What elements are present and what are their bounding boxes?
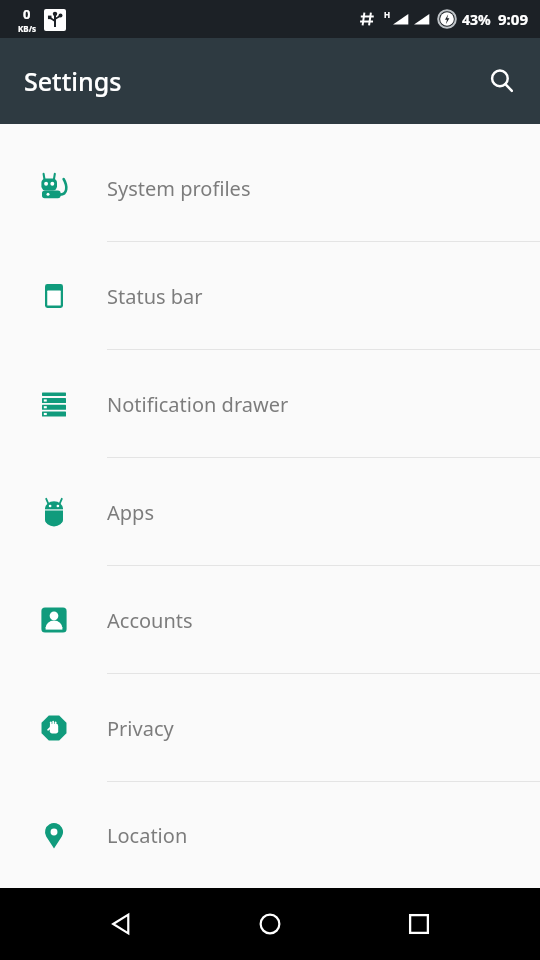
button[interactable]: Apps (0, 458, 540, 566)
staticText: Apps (107, 499, 154, 526)
button[interactable]: Notification drawer (0, 350, 540, 458)
staticText: Location (107, 822, 188, 849)
staticText: 43% (462, 10, 491, 29)
button[interactable]: Recent apps (391, 896, 447, 952)
staticText: 0 (23, 5, 31, 23)
button[interactable]: Location (0, 782, 540, 888)
staticText: 9:09 (498, 9, 528, 29)
staticText: Privacy (107, 715, 174, 742)
staticText: Settings (24, 64, 122, 98)
staticText: Status bar (107, 283, 203, 310)
button[interactable]: Status bar (0, 242, 540, 350)
button[interactable]: Back (93, 896, 149, 952)
staticText: Notification drawer (107, 391, 289, 418)
button[interactable]: Search (478, 57, 526, 105)
button[interactable]: System profiles (0, 134, 540, 242)
staticText: System profiles (107, 175, 251, 202)
staticText: H (384, 9, 391, 20)
button[interactable]: Home (242, 896, 298, 952)
button[interactable]: Accounts (0, 566, 540, 674)
button[interactable]: Privacy (0, 674, 540, 782)
staticText: KB/s (18, 23, 36, 34)
staticText: Accounts (107, 607, 193, 634)
